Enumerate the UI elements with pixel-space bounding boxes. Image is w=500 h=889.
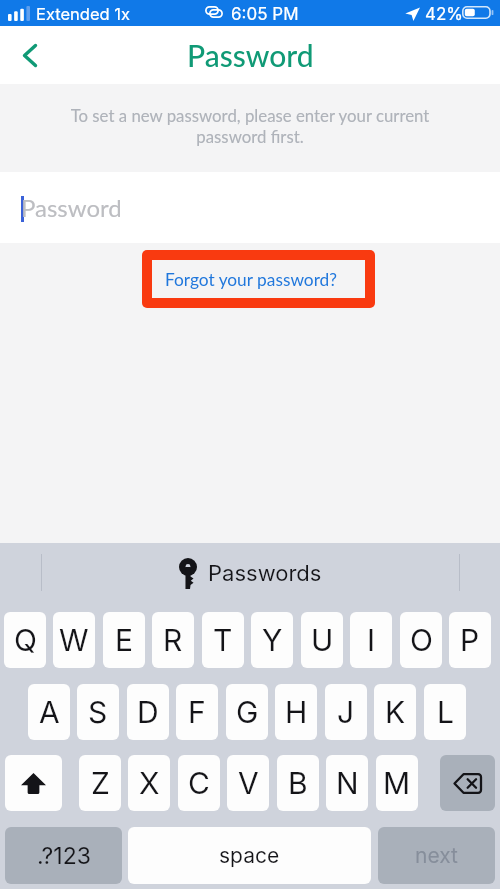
staticText: R	[163, 622, 183, 658]
staticText: F	[188, 694, 206, 730]
button[interactable]: K	[374, 684, 416, 740]
button[interactable]: G	[226, 684, 268, 740]
staticText: G	[236, 694, 259, 730]
button[interactable]: next	[378, 827, 495, 884]
button[interactable]: J	[325, 684, 367, 740]
staticText: M	[383, 765, 411, 801]
button[interactable]: .?123	[5, 827, 122, 884]
staticText: Q	[14, 622, 37, 658]
staticText: J	[337, 694, 355, 730]
button[interactable]: S	[77, 684, 119, 740]
staticText: L	[437, 694, 454, 730]
button[interactable]: E	[103, 612, 145, 668]
button[interactable]: T	[202, 612, 244, 668]
staticText: U	[311, 622, 334, 658]
button[interactable]: A	[28, 684, 70, 740]
button[interactable]: M	[376, 755, 418, 811]
staticText: next	[415, 843, 458, 868]
button[interactable]: W	[53, 612, 95, 668]
button[interactable]: space	[128, 827, 371, 884]
button[interactable]: V	[227, 755, 269, 811]
staticText: Password	[21, 193, 122, 222]
button[interactable]: U	[301, 612, 343, 668]
button[interactable]: I	[350, 612, 392, 668]
staticText: B	[288, 765, 308, 801]
staticText: X	[139, 765, 160, 801]
button[interactable]: Forgot your password?	[152, 260, 365, 298]
staticText: Y	[262, 622, 283, 658]
button[interactable]: P	[449, 612, 491, 668]
staticText: S	[88, 694, 108, 730]
button[interactable]: Back	[6, 30, 54, 80]
button[interactable]: Password	[0, 172, 500, 243]
button[interactable]: C	[178, 755, 220, 811]
staticText: To set a new password, please enter your…	[60, 105, 440, 147]
staticText: V	[238, 765, 259, 801]
button[interactable]: X	[128, 755, 170, 811]
staticText: space	[219, 843, 280, 868]
staticText: .?123	[37, 842, 91, 870]
staticText: H	[285, 694, 308, 730]
button[interactable]: Backspace	[440, 755, 495, 811]
staticText: O	[410, 622, 433, 658]
button[interactable]: Z	[79, 755, 121, 811]
staticText: I	[367, 622, 376, 658]
staticText: 6:05 PM	[231, 4, 299, 25]
staticText: T	[213, 622, 233, 658]
staticText: Passwords	[208, 560, 322, 587]
staticText: Z	[91, 765, 110, 801]
staticText: D	[137, 694, 159, 730]
button[interactable]: R	[152, 612, 194, 668]
staticText: Extended 1x	[36, 4, 131, 24]
button[interactable]: N	[326, 755, 368, 811]
button[interactable]: Passwords	[179, 557, 322, 589]
button[interactable]: H	[275, 684, 317, 740]
button[interactable]: O	[400, 612, 442, 668]
button[interactable]: D	[127, 684, 169, 740]
staticText: W	[59, 622, 89, 658]
button[interactable]: F	[176, 684, 218, 740]
staticText: 42%	[425, 4, 464, 25]
staticText: P	[460, 622, 480, 658]
staticText: A	[39, 694, 60, 730]
staticText: K	[385, 694, 406, 730]
button[interactable]: Y	[251, 612, 293, 668]
button[interactable]: L	[424, 684, 466, 740]
staticText: C	[188, 765, 210, 801]
button[interactable]: Q	[4, 612, 46, 668]
staticText: Forgot your password?	[165, 269, 338, 290]
button[interactable]: B	[277, 755, 319, 811]
button[interactable]: Shift	[5, 755, 62, 811]
staticText: N	[336, 765, 359, 801]
staticText: E	[115, 622, 134, 658]
staticText: Password	[187, 37, 314, 73]
